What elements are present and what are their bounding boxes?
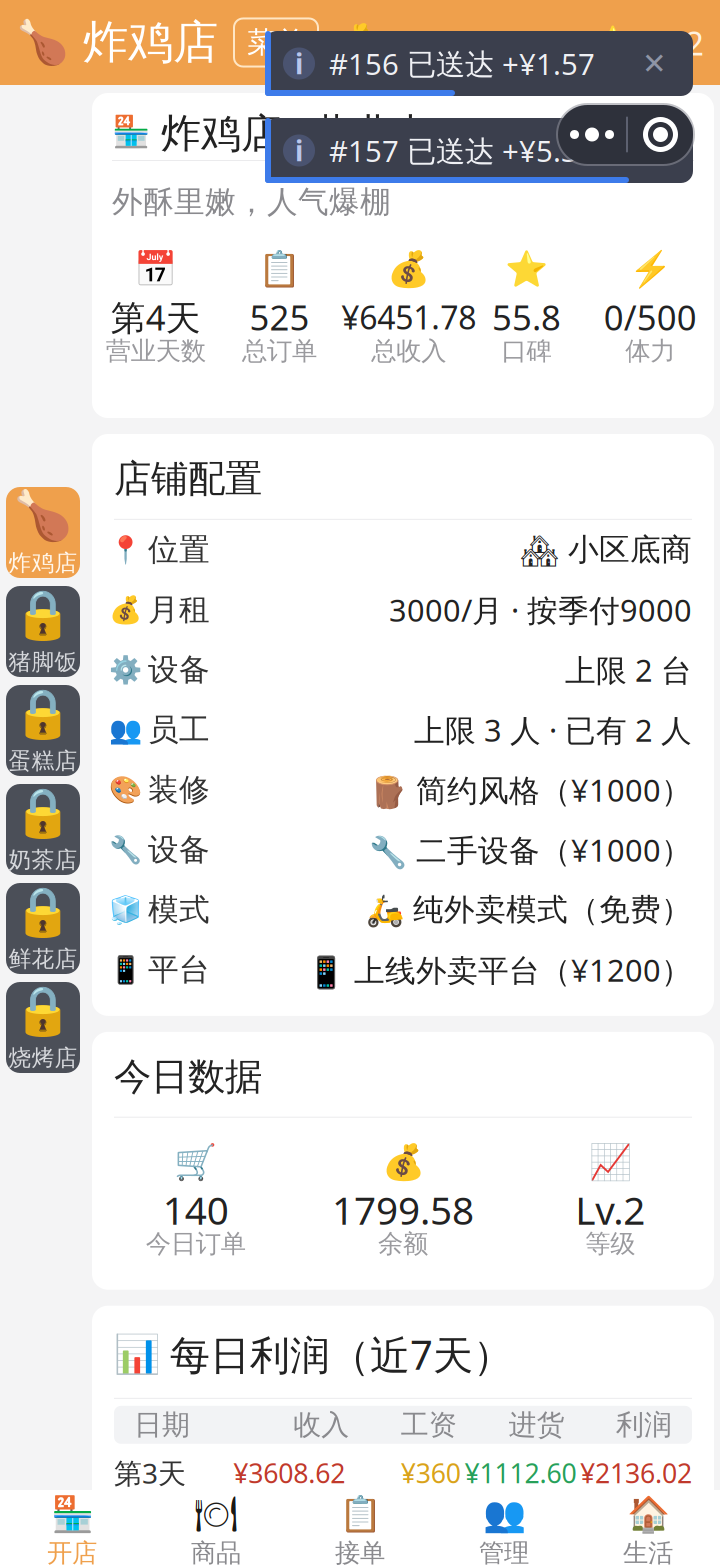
staticText: 525 [249, 294, 309, 340]
button[interactable]: 🍽 [144, 1490, 288, 1565]
staticText: 👥 [482, 1494, 525, 1534]
staticText: 上限 2 台 [565, 649, 692, 690]
staticText: 🔒 [13, 983, 73, 1038]
staticText: ¥6451.78 [341, 296, 476, 338]
staticText: 设备 [148, 831, 210, 869]
button[interactable]: 📋 [288, 1490, 432, 1565]
staticText: 外酥里嫩，人气爆棚 [112, 183, 391, 221]
staticText: 📍 [108, 535, 141, 565]
staticText: 每日利润（近7天） [170, 1328, 513, 1381]
staticText: 0/500 [604, 294, 697, 340]
staticText: 🔒 [13, 884, 73, 939]
staticText: ¥360 [401, 1455, 461, 1490]
staticText: 进货 [508, 1408, 564, 1442]
staticText: 炸鸡店 [8, 549, 77, 577]
staticText: 蛋糕店 [8, 747, 77, 775]
staticText: 1799.58 [332, 1184, 474, 1235]
staticText: 鲜花店 [8, 945, 77, 973]
button[interactable]: 🔒 [6, 883, 80, 974]
staticText: 总收入 [371, 335, 446, 366]
staticText: 月租 [148, 591, 210, 629]
button[interactable]: 🏠 [576, 1490, 720, 1565]
staticText: ⚡️ [629, 249, 672, 289]
staticText: 今日数据 [114, 1054, 262, 1100]
staticText: 📱 [108, 955, 141, 985]
staticText: 🧊 [108, 895, 141, 925]
button[interactable]: 🔒 [6, 982, 80, 1073]
staticText: 3000/月 · 按季付9000 [389, 589, 692, 630]
staticText: ¥2136.02 [580, 1455, 692, 1490]
staticText: 炸鸡店 · 营业中 [161, 105, 432, 158]
staticText: 📋 [338, 1494, 381, 1534]
button[interactable]: Stop recording [628, 105, 693, 164]
staticText: 🎨 [108, 775, 141, 805]
staticText: 第4天 [111, 294, 201, 340]
staticText: 📈 [589, 1142, 632, 1181]
staticText: 开店 [47, 1537, 97, 1565]
staticText: ¥3608.62 [233, 1455, 345, 1490]
staticText: i [295, 132, 303, 169]
staticText: 生活 [623, 1537, 673, 1565]
staticText: 💰 [381, 1142, 424, 1181]
staticText: 🛵 纯外卖模式（免费） [366, 891, 692, 929]
staticText: 👥 [108, 715, 141, 745]
staticText: 🍗 [13, 488, 73, 543]
staticText: 🏪 [50, 1494, 93, 1534]
staticText: 日期 [134, 1408, 190, 1442]
staticText: 体力 [625, 335, 675, 366]
staticText: Lv.2 [575, 1184, 645, 1235]
staticText: 菜单 [247, 24, 305, 60]
button[interactable]: 🔒 [6, 586, 80, 677]
staticText: 商品 [191, 1537, 241, 1565]
staticText: 余额 [378, 1228, 428, 1259]
staticText: 营业天数 [106, 335, 206, 366]
staticText: 奶茶店 [8, 846, 77, 874]
button[interactable]: 🔒 [6, 685, 80, 776]
staticText: ⭐️ Lv.2 [592, 20, 704, 65]
button[interactable]: 🔒 [6, 784, 80, 875]
staticText: 💰 [332, 23, 375, 62]
staticText: 💰 [387, 249, 430, 289]
staticText: 📅 [134, 249, 177, 289]
staticText: 🏪 [112, 114, 150, 149]
staticText: ✕ [642, 47, 667, 80]
staticText: 模式 [148, 891, 210, 929]
staticText: 员工 [148, 711, 210, 749]
staticText: 🍽 [194, 1494, 238, 1534]
button[interactable]: More options [558, 105, 626, 164]
staticText: 🔧 [108, 835, 141, 865]
staticText: 猪脚饭 [8, 648, 77, 676]
staticText: 🔒 [13, 587, 73, 642]
staticText: 设备 [148, 651, 210, 689]
staticText: 🏠 [626, 1494, 669, 1534]
staticText: 💰 [108, 595, 141, 625]
staticText: 总订单 [242, 335, 317, 366]
staticText: ¥1112.60 [464, 1455, 576, 1490]
staticText: 🛒 [174, 1142, 217, 1181]
staticText: 炸鸡店 [83, 15, 218, 70]
staticText: i [295, 45, 303, 82]
button[interactable]: 菜单 [234, 18, 318, 66]
button[interactable]: 🍗 [6, 487, 80, 578]
staticText: 🍗 [16, 18, 69, 67]
staticText: 接单 [335, 1537, 385, 1565]
staticText: 第3天 [114, 1454, 186, 1491]
button[interactable]: 👥 [432, 1490, 576, 1565]
staticText: 🔧 二手设备（¥1000） [369, 829, 692, 870]
staticText: 装修 [148, 771, 210, 809]
staticText: 55.8 [492, 294, 561, 340]
staticText: 口碑 [502, 335, 552, 366]
staticText: 位置 [148, 531, 210, 569]
staticText: 📊 [114, 1333, 160, 1376]
button[interactable]: 🏪 [0, 1490, 144, 1565]
staticText: #156 已送达 +¥1.57 [329, 44, 595, 83]
staticText: 🔒 [13, 686, 73, 741]
staticText: 📱 上线外卖平台（¥1200） [307, 949, 692, 990]
staticText: 管理 [479, 1537, 529, 1565]
staticText: 140 [163, 1184, 229, 1235]
staticText: 📋 [258, 249, 301, 289]
staticText: 烧烤店 [8, 1044, 77, 1072]
staticText: 🪵 简约风格（¥1000） [369, 769, 692, 810]
staticText: 🏘 小区底商 [520, 531, 692, 569]
staticText: 🔒 [13, 785, 73, 840]
